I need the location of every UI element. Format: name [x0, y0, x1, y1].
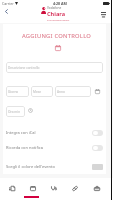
- staticText: Integra con iCal: [6, 130, 36, 135]
- button[interactable]: Pick time: [26, 106, 35, 115]
- button[interactable]: Scegli il colore dell'evento: [3, 162, 106, 171]
- button[interactable]: Ricorda con notifica: [3, 143, 106, 152]
- button[interactable]: Farmaci: [64, 178, 85, 200]
- button[interactable]: Valigetta: [86, 178, 107, 200]
- staticText: AGGIUNGI CONTROLLO: [5, 32, 108, 40]
- button[interactable]: Giorno: [6, 86, 29, 97]
- button[interactable]: Mese: [31, 86, 53, 97]
- staticText: Chiara: [47, 10, 65, 18]
- button[interactable]: Visite: [43, 178, 64, 200]
- button[interactable]: Referti: [1, 178, 22, 200]
- staticText: 4:28 AM: [53, 1, 67, 6]
- staticText: Carrier: [2, 1, 14, 6]
- button[interactable]: Back: [1, 6, 12, 17]
- staticText: Mese: [33, 90, 42, 94]
- button[interactable]: Ora min: [6, 106, 25, 117]
- button[interactable]: Descrizione controllo: [6, 62, 103, 73]
- button[interactable]: Anno: [55, 86, 91, 97]
- button[interactable]: Calendario: [22, 178, 43, 200]
- button[interactable]: Menu: [98, 9, 109, 20]
- staticText: Anno: [57, 90, 65, 94]
- button[interactable]: Pick date: [92, 86, 102, 96]
- staticText: Vodafone: [47, 6, 62, 10]
- staticText: Descrizione controllo: [8, 66, 40, 70]
- button[interactable]: Integra con iCal: [3, 128, 106, 137]
- staticText: Scegli il colore dell'evento: [6, 164, 56, 170]
- staticText: il tuo assistente medico: [47, 19, 70, 22]
- staticText: Giorno: [8, 90, 19, 94]
- staticText: Ora min: [8, 110, 21, 114]
- staticText: Ricorda con notifica: [6, 145, 43, 150]
